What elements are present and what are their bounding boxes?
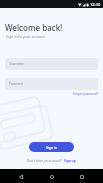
button[interactable]: Back xyxy=(11,170,31,183)
staticText: Sign up xyxy=(64,159,76,163)
staticText: Password xyxy=(9,82,23,86)
staticText: Username xyxy=(9,62,24,66)
button[interactable]: Username xyxy=(5,58,98,70)
button[interactable]: Home xyxy=(42,170,62,183)
button[interactable]: Recent apps xyxy=(72,170,92,183)
button[interactable]: Forgot password? xyxy=(71,90,101,98)
staticText: Sign in to your account xyxy=(6,34,45,39)
staticText: Forgot password? xyxy=(73,92,99,96)
button[interactable]: Sign in xyxy=(29,142,74,152)
staticText: Don't have an account? xyxy=(27,159,62,163)
staticText: Sign in xyxy=(46,145,58,150)
staticText: Welcome back! xyxy=(5,22,63,33)
button[interactable]: Password xyxy=(5,78,98,90)
staticText: 12:30 xyxy=(90,2,101,7)
button[interactable]: Sign up xyxy=(64,159,76,163)
